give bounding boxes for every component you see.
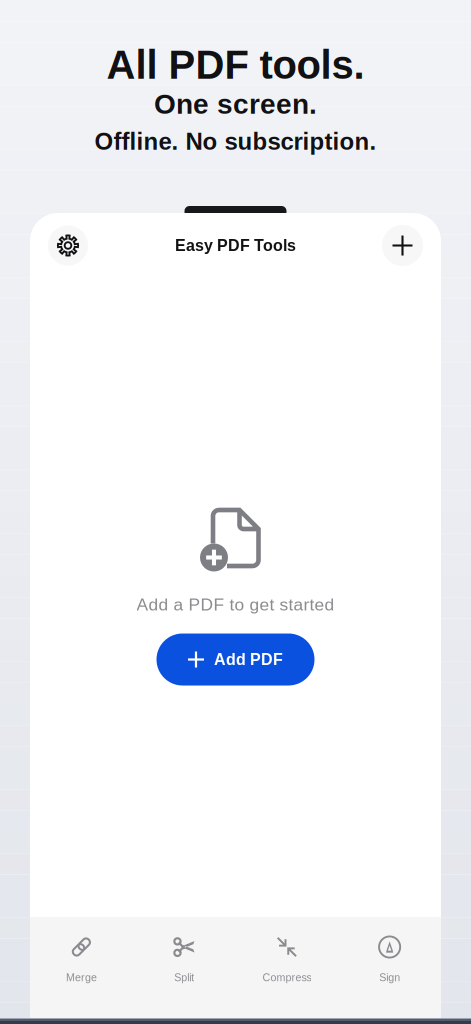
staticText: One screen.: [154, 88, 317, 120]
staticText: All PDF tools.: [106, 43, 364, 87]
staticText: Easy PDF Tools: [175, 237, 296, 254]
button[interactable]: Settings: [48, 225, 88, 265]
button[interactable]: Add PDF: [382, 225, 423, 266]
button[interactable]: Merge: [30, 916, 133, 1024]
button[interactable]: Add PDF: [156, 633, 314, 685]
staticText: Sign: [379, 971, 400, 983]
staticText: Compress: [262, 971, 311, 983]
staticText: Add PDF: [214, 651, 283, 668]
staticText: Split: [174, 971, 194, 983]
staticText: Offline. No subscription.: [94, 128, 376, 155]
staticText: Merge: [66, 971, 97, 983]
button[interactable]: Split: [133, 916, 236, 1024]
button[interactable]: Sign: [338, 916, 441, 1024]
staticText: Add a PDF to get started: [136, 595, 334, 614]
button[interactable]: Compress: [235, 916, 338, 1024]
